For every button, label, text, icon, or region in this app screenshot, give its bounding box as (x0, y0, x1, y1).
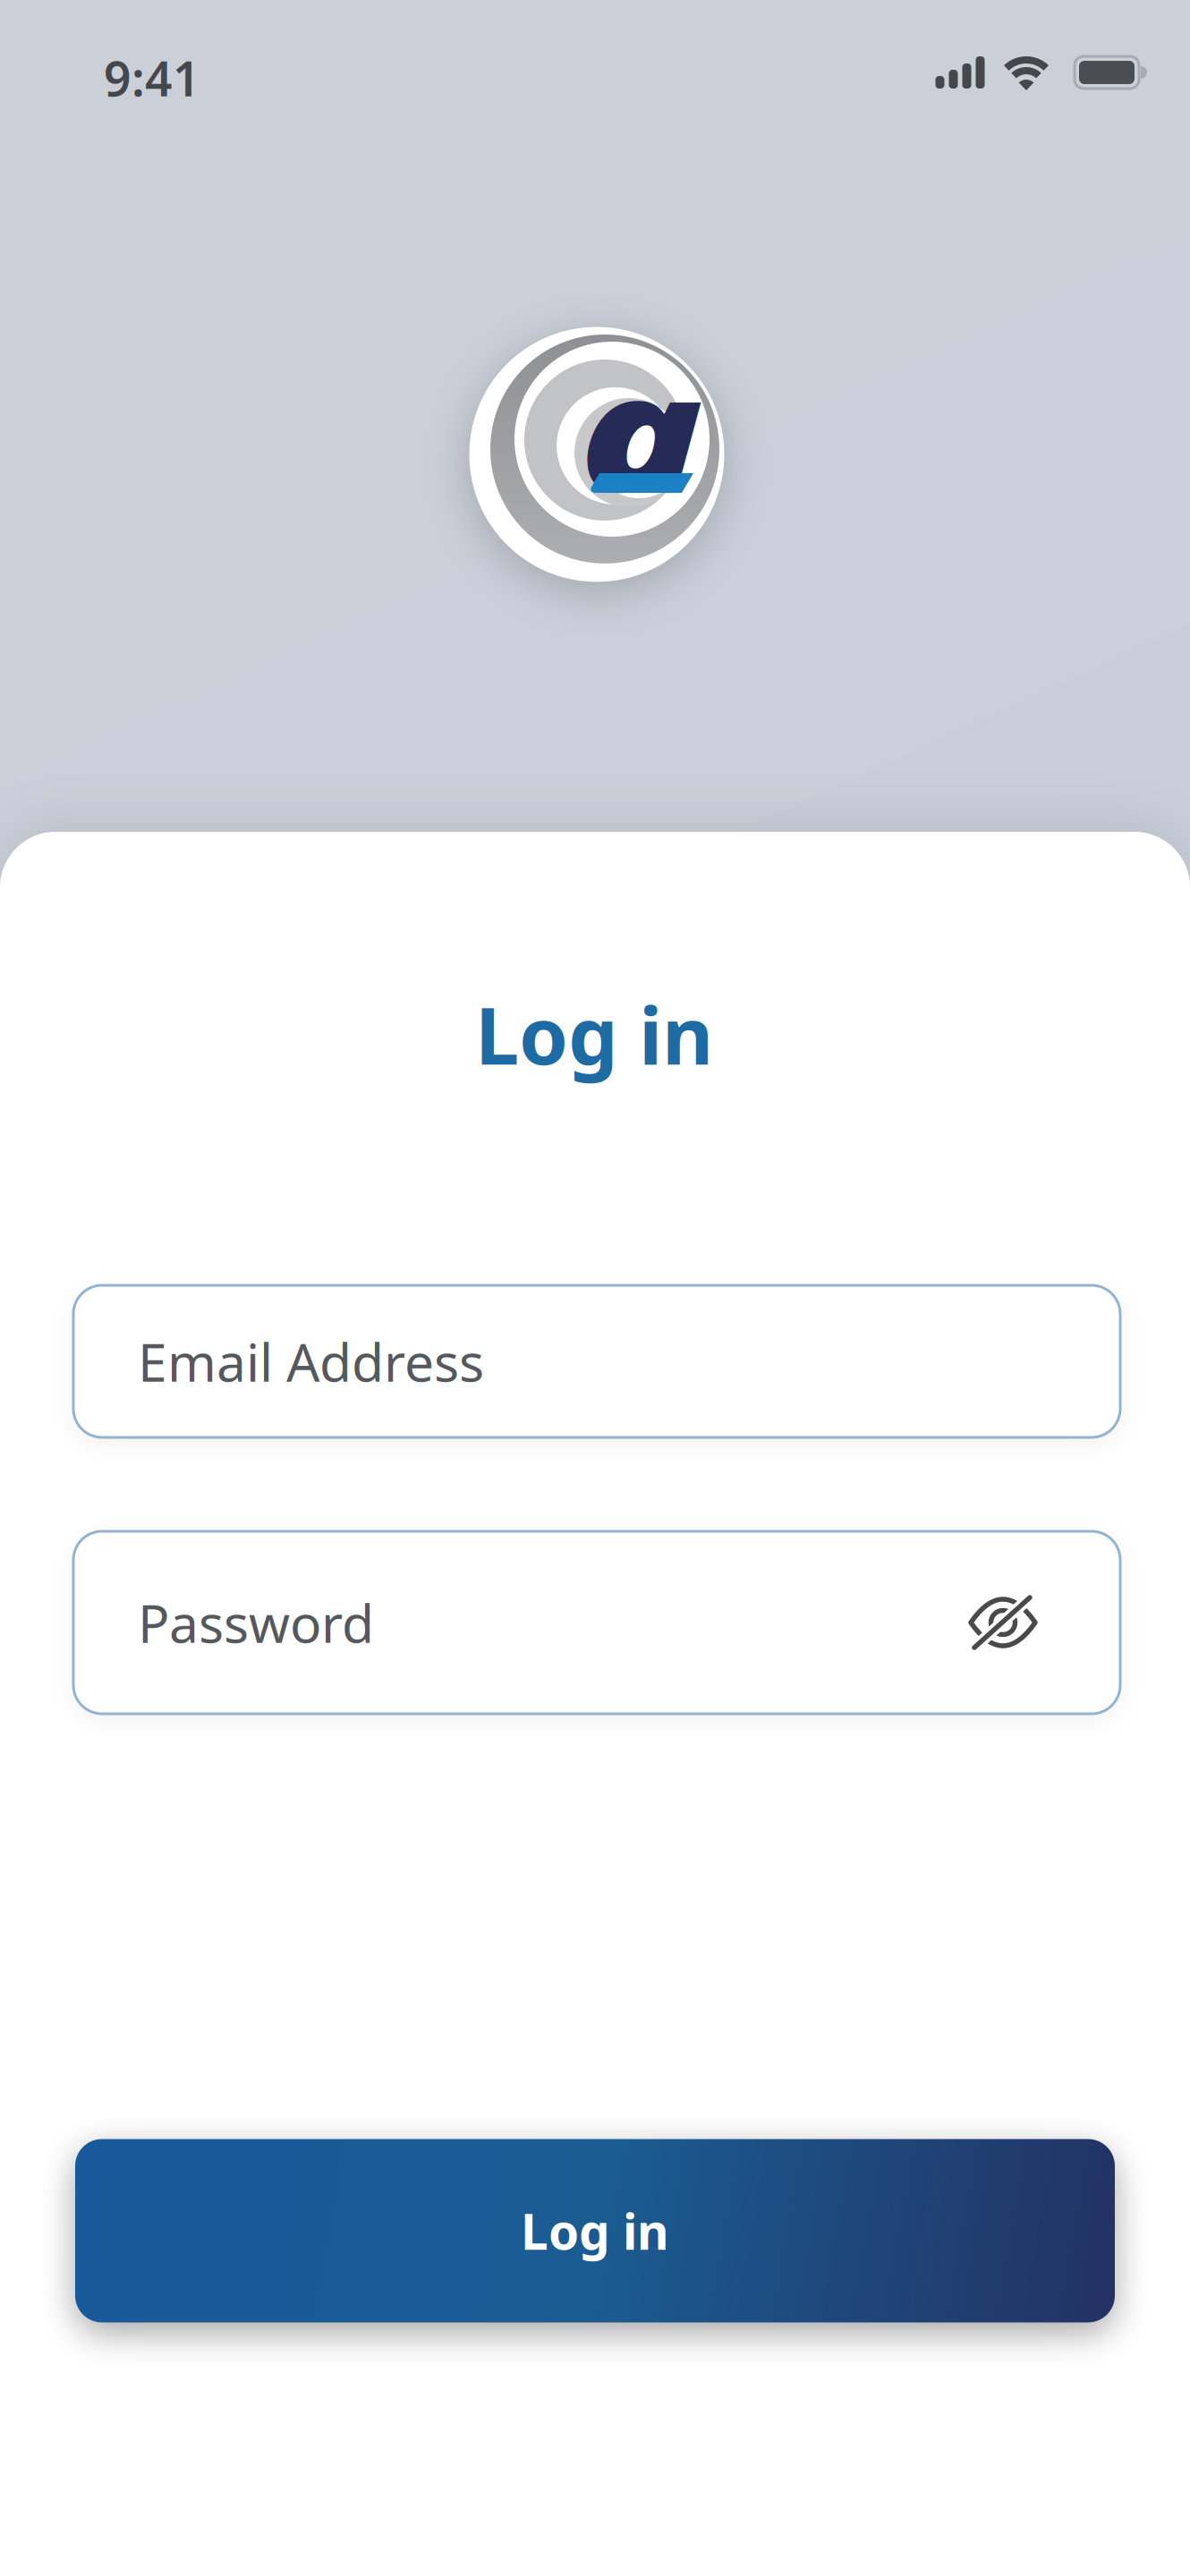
staticText: Password (138, 1588, 374, 1657)
button[interactable]: Show password (954, 1573, 1052, 1672)
button[interactable]: Log in (75, 2139, 1115, 2322)
staticText: Log in (521, 2198, 669, 2263)
staticText: Log in (475, 982, 713, 1086)
staticText: 9:41 (104, 46, 200, 109)
button[interactable]: Password (73, 1531, 1120, 1714)
button[interactable]: Email Address (73, 1285, 1120, 1437)
staticText: Email Address (138, 1326, 484, 1396)
staticText: a (592, 323, 689, 536)
